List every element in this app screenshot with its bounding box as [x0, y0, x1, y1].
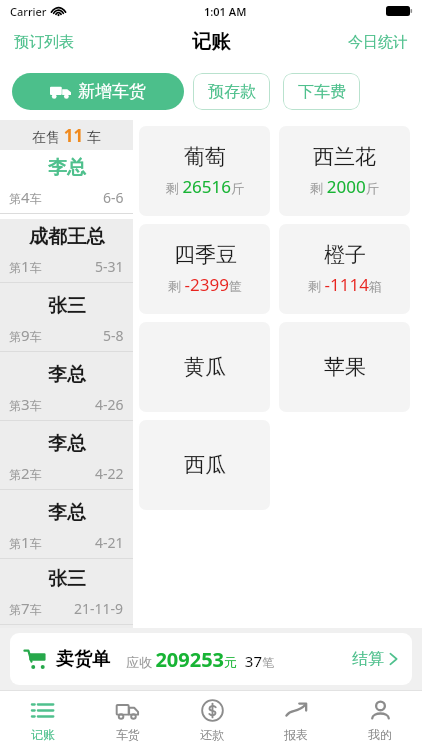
button[interactable]: 橙子	[279, 224, 410, 314]
staticText: 李总	[48, 156, 86, 180]
button[interactable]: 我的	[338, 691, 422, 750]
staticText: 李总	[48, 501, 86, 525]
staticText: 成都王总	[29, 225, 105, 249]
staticText: 第1车	[9, 532, 42, 552]
staticText: 4-26	[95, 395, 124, 414]
staticText: 剩 -1114箱	[308, 273, 382, 296]
button[interactable]: 西瓜	[139, 420, 270, 510]
button[interactable]: 李总	[0, 426, 133, 495]
staticText: 车货	[116, 727, 140, 742]
staticText: 苹果	[324, 354, 366, 380]
staticText: 1:01 AM	[204, 4, 247, 19]
button[interactable]: 李总	[0, 495, 133, 564]
staticText: 剩 26516斤	[166, 175, 244, 198]
staticText: 第7车	[9, 598, 42, 618]
button[interactable]: 四季豆	[139, 224, 270, 314]
staticText: 第3车	[9, 394, 42, 414]
staticText: 第2车	[9, 463, 42, 483]
staticText: 剩 2000斤	[310, 175, 379, 198]
staticText: 第4车	[9, 187, 42, 207]
button[interactable]: 西兰花	[279, 126, 410, 216]
staticText: 下车费	[298, 82, 346, 102]
staticText: 四季豆	[174, 242, 237, 268]
staticText: 剩 -2399筐	[168, 273, 242, 296]
button[interactable]: 李总	[0, 357, 133, 426]
button[interactable]: 还款	[170, 691, 254, 750]
staticText: 今日统计	[348, 33, 408, 52]
staticText: 记账	[31, 727, 55, 742]
button[interactable]: 成都王总	[0, 219, 133, 288]
button[interactable]: 张三	[0, 288, 133, 357]
staticText: 4-21	[95, 533, 124, 552]
staticText: 21-11-9	[74, 599, 124, 618]
button[interactable]: 报表	[254, 691, 338, 750]
staticText: 我的	[368, 727, 392, 742]
staticText: 张三	[48, 294, 86, 318]
button[interactable]: 黄瓜	[139, 322, 270, 412]
button[interactable]: 预存款	[193, 73, 270, 110]
staticText: 5-31	[95, 257, 124, 276]
button[interactable]: 记账	[0, 691, 85, 750]
button[interactable]: 卖货单	[10, 633, 412, 685]
staticText: 李总	[48, 363, 86, 387]
button[interactable]: 预订列表	[12, 29, 76, 56]
staticText: 李总	[48, 432, 86, 456]
button[interactable]: 张三	[0, 564, 133, 628]
staticText: 6-6	[103, 188, 124, 207]
button[interactable]: 葡萄	[139, 126, 270, 216]
staticText: 第9车	[9, 325, 42, 345]
staticText: 5-8	[103, 326, 124, 345]
staticText: 4-22	[95, 464, 124, 483]
staticText: 新增车货	[78, 81, 146, 102]
staticText: Carrier	[10, 4, 47, 19]
staticText: 记账	[192, 30, 230, 54]
staticText: 葡萄	[184, 144, 226, 170]
staticText: 预存款	[208, 82, 256, 102]
button[interactable]: 新增车货	[12, 73, 184, 110]
staticText: 橙子	[324, 242, 366, 268]
staticText: 黄瓜	[184, 354, 226, 380]
button[interactable]: 今日统计	[346, 29, 410, 56]
staticText: 第1车	[9, 256, 42, 276]
staticText: 张三	[48, 567, 86, 591]
staticText: 还款	[200, 727, 224, 742]
button[interactable]: 李总	[0, 150, 133, 219]
button[interactable]: 下车费	[283, 73, 360, 110]
button[interactable]: 苹果	[279, 322, 410, 412]
staticText: 西兰花	[313, 144, 376, 170]
staticText: 卖货单	[56, 648, 110, 671]
staticText: 西瓜	[184, 452, 226, 478]
staticText: 在售 11 车	[32, 124, 101, 147]
staticText: 报表	[284, 727, 308, 742]
staticText: 预订列表	[14, 33, 74, 52]
staticText: 结算	[352, 649, 384, 669]
button[interactable]: 车货	[85, 691, 170, 750]
staticText: 应收 209253元 37笔	[126, 646, 274, 673]
